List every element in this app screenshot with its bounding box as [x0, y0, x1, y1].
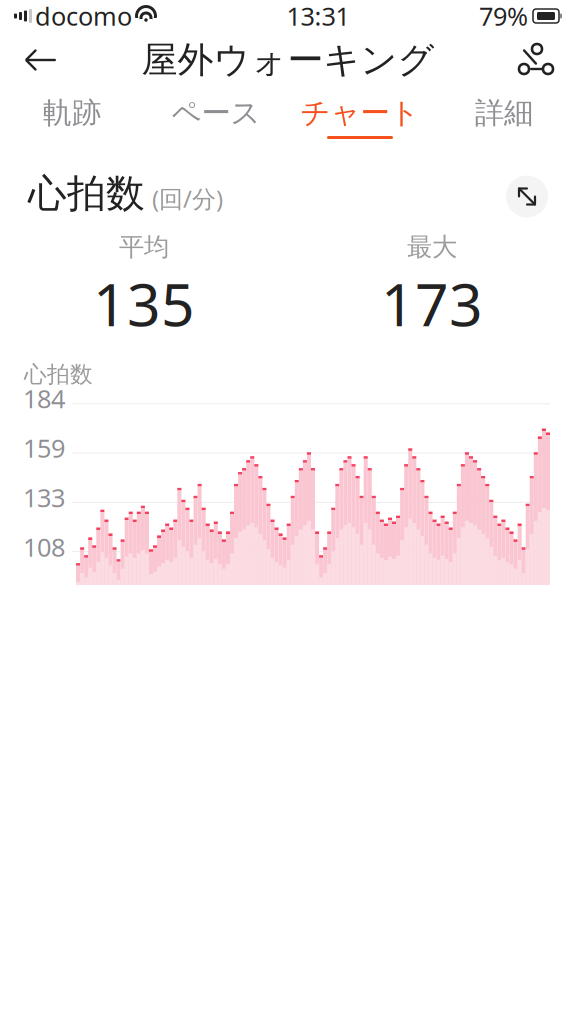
staticText: (回/分) — [152, 183, 223, 214]
button[interactable]: 軌跡 — [0, 88, 144, 146]
button[interactable]: 戻る — [12, 33, 70, 87]
staticText: 135 — [93, 265, 195, 342]
button[interactable]: 拡大 — [506, 175, 548, 217]
button[interactable]: 共有 — [506, 33, 564, 87]
button[interactable]: 詳細 — [432, 88, 576, 146]
staticText: 最大 — [407, 231, 457, 263]
staticText: 心拍数 — [24, 360, 93, 388]
staticText: 184 — [23, 381, 65, 415]
staticText: 軌跡 — [43, 95, 101, 131]
button[interactable]: ペース — [144, 88, 288, 146]
staticText: 心拍数 — [28, 170, 145, 217]
staticText: 159 — [23, 431, 65, 465]
staticText: 108 — [23, 530, 65, 564]
staticText: 屋外ウォーキング — [141, 38, 434, 82]
staticText: 133 — [23, 480, 65, 514]
staticText: 79% — [479, 0, 528, 33]
staticText: 平均 — [119, 231, 169, 263]
button[interactable]: チャート — [288, 88, 432, 146]
staticText: 173 — [381, 265, 483, 342]
staticText: docomo — [35, 0, 132, 33]
staticText: 詳細 — [475, 95, 533, 131]
staticText: チャート — [300, 95, 419, 131]
staticText: ペース — [171, 95, 260, 131]
staticText: 13:31 — [286, 0, 349, 33]
